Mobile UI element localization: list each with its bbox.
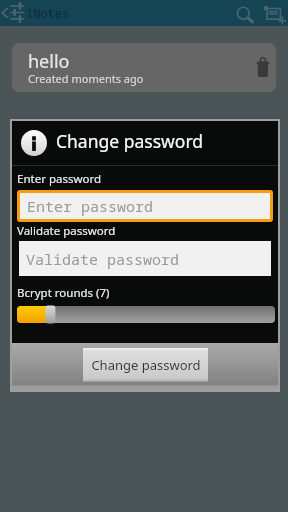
staticText: Enter password (17, 171, 102, 187)
button[interactable]: hello (12, 43, 276, 92)
staticText: Change password (56, 129, 204, 153)
staticText: Bcrypt rounds (7) (17, 285, 110, 301)
button[interactable]: Enter password (20, 193, 270, 219)
staticText: Change password (91, 356, 201, 374)
staticText: Validate password (17, 223, 116, 239)
staticText: 1Notes (26, 5, 70, 21)
staticText: Created moments ago (28, 71, 144, 86)
button[interactable] (17, 305, 275, 324)
staticText: Validate password (26, 249, 180, 269)
button[interactable]: Delete note (250, 43, 276, 92)
button[interactable]: Navigate up (0, 0, 26, 26)
button[interactable]: Change password (83, 348, 208, 382)
button[interactable]: Validate password (19, 241, 271, 276)
button[interactable]: New note (258, 0, 288, 26)
staticText: hello (28, 49, 70, 74)
button[interactable]: Search (232, 0, 258, 26)
staticText: Enter password (27, 196, 154, 216)
